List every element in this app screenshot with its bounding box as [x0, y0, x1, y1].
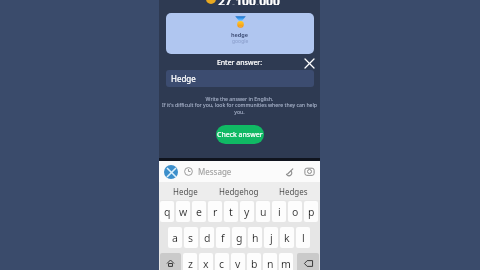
staticText: y — [244, 205, 250, 219]
staticText: 27,100,000 — [218, 0, 280, 5]
button[interactable]: Schedule message — [184, 167, 193, 176]
staticText: Hedge — [173, 186, 198, 197]
button[interactable]: Hedge — [159, 182, 212, 200]
staticText: a — [172, 231, 178, 245]
staticText: m — [281, 257, 291, 270]
button[interactable]: j — [264, 227, 278, 248]
staticText: hedge — [231, 31, 249, 38]
staticText: Hedgehog — [219, 186, 259, 197]
button[interactable]: o — [288, 201, 302, 222]
staticText: w — [179, 205, 188, 219]
staticText: x — [203, 257, 209, 270]
button[interactable]: Hedgehog — [212, 182, 266, 200]
staticText: k — [284, 231, 290, 245]
button[interactable]: h — [248, 227, 262, 248]
staticText: Hedge — [171, 73, 196, 84]
button[interactable]: m — [279, 253, 293, 270]
button[interactable]: c — [215, 253, 229, 270]
staticText: q — [164, 205, 171, 219]
staticText: f — [221, 231, 225, 245]
button[interactable]: y — [240, 201, 254, 222]
button[interactable]: q — [160, 201, 174, 222]
button[interactable]: x — [199, 253, 213, 270]
staticText: s — [188, 231, 194, 245]
staticText: d — [204, 231, 211, 245]
button[interactable]: l — [296, 227, 310, 248]
button[interactable]: Close — [303, 57, 316, 70]
staticText: l — [302, 231, 305, 245]
button[interactable]: d — [200, 227, 214, 248]
staticText: n — [267, 257, 274, 270]
staticText: j — [270, 231, 273, 245]
staticText: u — [260, 205, 267, 219]
staticText: t — [229, 205, 233, 219]
button[interactable]: e — [192, 201, 206, 222]
button[interactable]: k — [280, 227, 294, 248]
staticText: Hedges — [279, 186, 308, 197]
staticText: b — [251, 257, 258, 270]
staticText: p — [308, 205, 315, 219]
button[interactable]: b — [247, 253, 261, 270]
button[interactable]: i — [272, 201, 286, 222]
button[interactable]: g — [232, 227, 246, 248]
button[interactable]: r — [208, 201, 222, 222]
staticText: c — [219, 257, 225, 270]
staticText: Check answer — [217, 130, 263, 140]
button[interactable]: a — [168, 227, 182, 248]
staticText: o — [292, 205, 299, 219]
button[interactable]: p — [304, 201, 318, 222]
button[interactable]: Hedges — [266, 182, 320, 200]
button[interactable]: t — [224, 201, 238, 222]
staticText: google — [232, 38, 249, 45]
button[interactable]: w — [176, 201, 190, 222]
staticText: e — [196, 205, 202, 219]
button[interactable]: Hint image — [166, 13, 314, 54]
staticText: Message — [198, 166, 232, 177]
button[interactable]: z — [183, 253, 197, 270]
staticText: Write the answer in English. If it's dif… — [159, 95, 320, 116]
staticText: v — [235, 257, 241, 270]
button[interactable]: Check answer — [216, 125, 264, 144]
staticText: r — [213, 205, 218, 219]
button[interactable]: Hedge — [166, 70, 314, 87]
button[interactable]: Camera — [304, 166, 315, 177]
button[interactable]: f — [216, 227, 230, 248]
button[interactable]: Emoji — [164, 165, 178, 179]
staticText: Enter answer: — [159, 58, 320, 68]
button[interactable]: v — [231, 253, 245, 270]
button[interactable]: Backspace — [297, 253, 319, 270]
staticText: g — [236, 231, 243, 245]
staticText: i — [278, 205, 281, 219]
button[interactable]: u — [256, 201, 270, 222]
staticText: z — [188, 257, 193, 270]
button[interactable]: n — [263, 253, 277, 270]
staticText: h — [252, 231, 259, 245]
button[interactable]: Attach file — [285, 167, 295, 177]
button[interactable]: s — [184, 227, 198, 248]
button[interactable]: Shift — [160, 253, 181, 270]
